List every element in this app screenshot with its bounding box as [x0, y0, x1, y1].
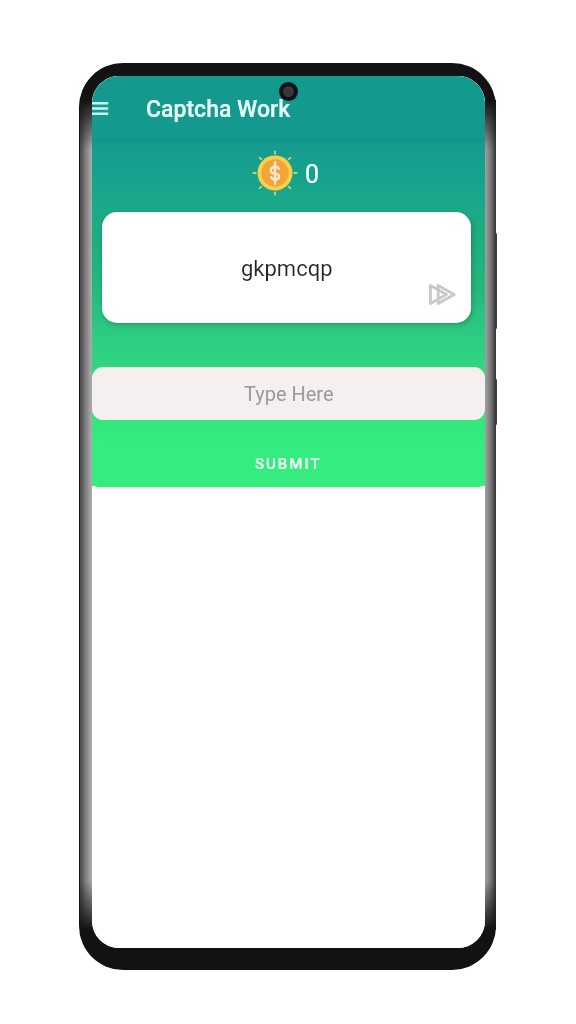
button[interactable]: Type Here	[92, 367, 485, 420]
button[interactable]: gkpmcqp	[102, 212, 471, 323]
button[interactable]: Next captcha	[426, 277, 460, 311]
staticText: Captcha Work	[146, 96, 291, 123]
staticText: gkpmcqp	[241, 256, 333, 282]
staticText: SUBMIT	[255, 455, 322, 473]
staticText: 0	[305, 160, 320, 189]
button[interactable]: SUBMIT	[92, 441, 485, 487]
staticText: Type Here	[244, 382, 334, 405]
button[interactable]: Open navigation menu	[92, 83, 120, 133]
